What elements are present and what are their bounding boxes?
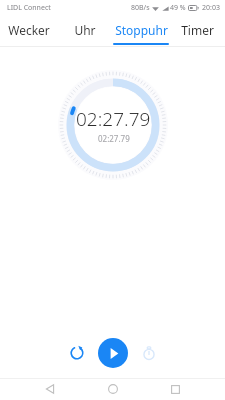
staticText: 49 %	[170, 3, 186, 13]
staticText: LIDL Connect	[7, 3, 51, 13]
staticText: Wecker	[8, 22, 50, 38]
button[interactable]: Timer	[169, 16, 225, 47]
button[interactable]: Reset	[66, 342, 88, 364]
button[interactable]: Uhr	[57, 16, 113, 47]
button[interactable]: Start	[98, 338, 128, 368]
staticText: 80B/s	[131, 3, 150, 13]
button[interactable]: Wecker	[0, 16, 57, 47]
staticText: 20:03	[202, 3, 220, 13]
staticText: Uhr	[74, 22, 96, 38]
button[interactable]: Recents	[162, 378, 188, 400]
button[interactable]: Home	[100, 378, 126, 400]
staticText: Timer	[181, 22, 214, 38]
button[interactable]: Stoppuhr	[113, 16, 169, 47]
staticText: 02:27.79	[76, 106, 151, 132]
staticText: Stoppuhr	[115, 22, 168, 38]
button[interactable]: Lap	[138, 342, 160, 364]
button[interactable]: Back	[37, 378, 63, 400]
staticText: 02:27.79	[98, 133, 130, 144]
